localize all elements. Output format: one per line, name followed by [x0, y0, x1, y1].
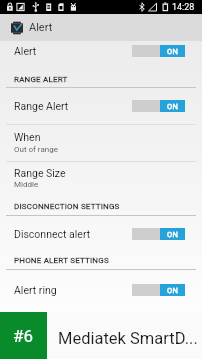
staticText: PHONE ALERT SETTINGS	[14, 256, 109, 265]
staticText: ON	[167, 102, 179, 111]
staticText: Alert	[29, 21, 53, 34]
button[interactable]: When	[0, 119, 202, 167]
staticText: DISCONNECTION SETTINGS	[14, 202, 120, 211]
staticText: Alert ring	[14, 284, 132, 296]
staticText: When	[14, 131, 41, 143]
staticText: ON	[167, 230, 179, 239]
staticText: Range Size	[14, 167, 66, 179]
staticText: Middle	[14, 180, 39, 189]
staticText: Range Alert	[14, 100, 132, 112]
button[interactable]: Range Size	[0, 155, 202, 202]
button[interactable]: Alert app	[0, 14, 202, 41]
staticText: Alert	[14, 45, 132, 57]
button[interactable]: Alert ring	[0, 275, 202, 305]
staticText: 14:28	[172, 2, 195, 13]
button[interactable]: #6	[0, 312, 47, 359]
staticText: Disconnect alert	[14, 228, 132, 240]
other: Alert app	[11, 20, 23, 36]
button[interactable]: Disconnect alert	[0, 219, 202, 249]
button[interactable]: Range Alert	[0, 91, 202, 121]
staticText: ON	[167, 286, 179, 295]
staticText: Out of range	[14, 145, 58, 154]
staticText: #6	[13, 326, 34, 346]
staticText: ON	[167, 47, 179, 56]
staticText: RANGE ALERT	[14, 75, 68, 84]
button[interactable]: Alert	[0, 40, 202, 62]
staticText: Mediatek SmartD...	[58, 329, 198, 348]
